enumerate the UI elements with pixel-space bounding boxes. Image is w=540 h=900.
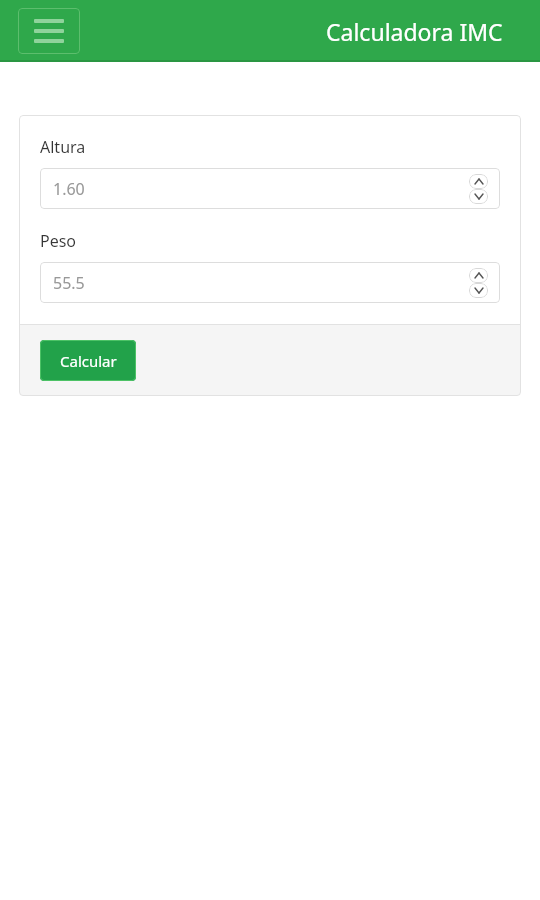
staticText: Calcular: [60, 351, 117, 371]
button[interactable]: Increase: [469, 268, 488, 283]
staticText: Altura: [40, 136, 86, 158]
button[interactable]: Menu: [18, 8, 80, 54]
staticText: 1.60: [53, 178, 85, 200]
button[interactable]: Increase: [469, 174, 488, 189]
button[interactable]: Calcular: [40, 340, 136, 381]
button[interactable]: 1.60: [40, 168, 500, 209]
button[interactable]: 55.5: [40, 262, 500, 303]
staticText: 55.5: [53, 272, 85, 294]
button[interactable]: Decrease: [469, 283, 488, 298]
button[interactable]: Decrease: [469, 189, 488, 204]
staticText: Calculadora IMC: [326, 16, 503, 47]
staticText: Peso: [40, 230, 77, 252]
